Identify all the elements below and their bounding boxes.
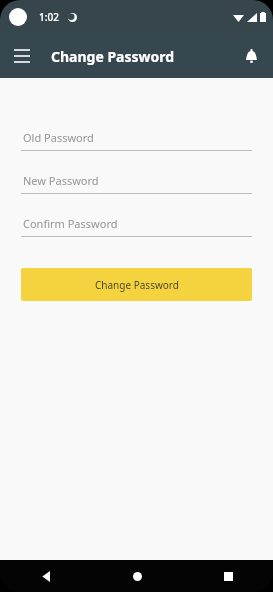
button[interactable]: Change Password bbox=[21, 268, 252, 301]
staticText: Confirm Password bbox=[23, 216, 118, 231]
button[interactable]: Notifications bbox=[237, 42, 265, 70]
button[interactable]: New Password bbox=[21, 173, 252, 194]
staticText: 1:02 bbox=[39, 10, 59, 24]
staticText: New Password bbox=[23, 173, 99, 188]
button[interactable]: Recent apps bbox=[211, 560, 245, 592]
staticText: Change Password bbox=[51, 47, 175, 66]
button[interactable]: Confirm Password bbox=[21, 216, 252, 237]
staticText: Change Password bbox=[95, 278, 179, 292]
button[interactable]: Open navigation menu bbox=[8, 42, 36, 70]
button[interactable]: Old Password bbox=[21, 130, 252, 151]
staticText: Old Password bbox=[23, 130, 94, 145]
button[interactable]: Back bbox=[29, 560, 63, 592]
button[interactable]: Home bbox=[120, 560, 154, 592]
